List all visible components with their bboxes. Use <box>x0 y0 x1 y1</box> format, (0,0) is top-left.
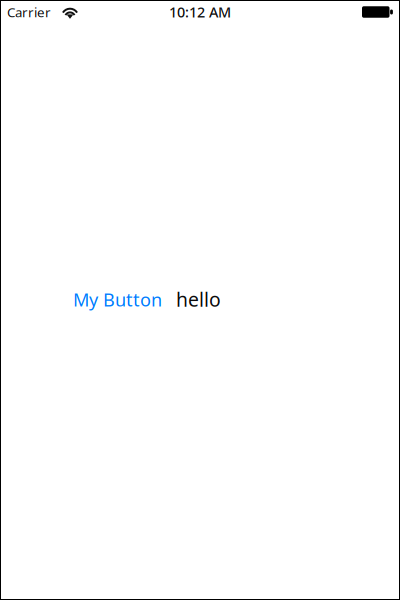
staticText: 10:12 AM <box>169 2 231 22</box>
staticText: My Button <box>73 287 162 312</box>
staticText: hello <box>176 286 221 312</box>
button[interactable]: My Button <box>69 284 166 315</box>
staticText: Carrier <box>7 3 51 21</box>
